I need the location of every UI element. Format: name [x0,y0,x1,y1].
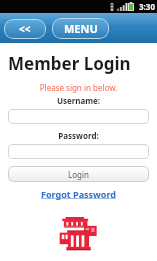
staticText: Password: [0,130,157,141]
staticText: Member Login [8,52,131,75]
button[interactable]: MENU [52,18,109,39]
button[interactable]: Back [4,19,46,39]
staticText: MENU [64,21,98,36]
button[interactable] [8,109,149,124]
button[interactable] [8,144,149,159]
staticText: Forgot Password [41,188,116,200]
staticText: << [19,22,31,36]
staticText: 3:30 [139,1,155,12]
staticText: Username: [0,95,157,106]
staticText: Please sign in below. [0,82,157,93]
staticText: Login [68,169,89,180]
button[interactable]: Login [8,166,149,182]
other: Company logo [58,217,100,251]
button[interactable]: Forgot Password [37,187,120,201]
